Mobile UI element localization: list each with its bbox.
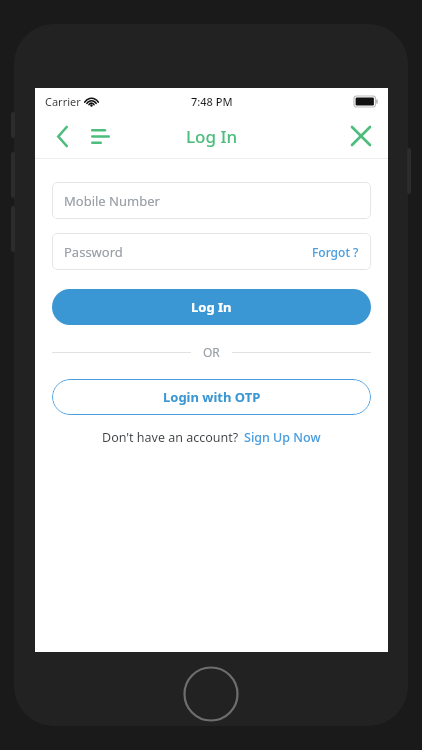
staticText: Forgot ?	[312, 244, 359, 260]
button[interactable]: Log In	[52, 289, 371, 325]
staticText: Mobile Number	[64, 192, 160, 210]
staticText: Don't have an account?	[102, 429, 239, 446]
button[interactable]: Forgot ?	[312, 244, 359, 260]
staticText: Carrier	[45, 94, 81, 109]
staticText: Log In	[191, 298, 232, 316]
button[interactable]: Sign Up Now	[244, 429, 321, 446]
button[interactable]: Close	[344, 119, 378, 153]
button[interactable]: Mobile Number	[52, 182, 371, 219]
button[interactable]: Login with OTP	[52, 379, 371, 415]
staticText: Password	[64, 243, 123, 261]
button[interactable]: Password	[52, 233, 371, 270]
button[interactable]: Back	[45, 119, 79, 153]
staticText: Sign Up Now	[244, 429, 321, 446]
staticText: Login with OTP	[163, 388, 261, 406]
staticText: 7:48 PM	[191, 94, 233, 109]
staticText: Log In	[186, 125, 238, 148]
button[interactable]: Menu	[83, 119, 117, 153]
staticText: OR	[203, 344, 220, 360]
